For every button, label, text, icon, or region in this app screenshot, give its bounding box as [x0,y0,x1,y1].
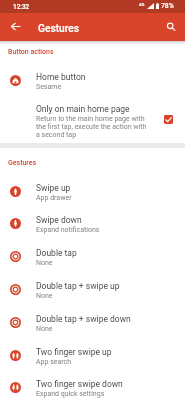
staticText: Two finger swipe up [36,347,112,357]
staticText: Expand quick settings [36,390,105,398]
button[interactable]: Swipe up [0,174,185,207]
staticText: Swipe down [36,215,82,225]
staticText: App search [36,358,72,366]
staticText: Gestures [38,23,79,35]
staticText: 12:32 [13,3,30,11]
staticText: None [36,292,53,300]
staticText: Expand notifications [36,226,100,234]
staticText: None [36,259,53,267]
staticText: Return to the main home page with the fi… [36,115,152,139]
staticText: App drawer [36,194,72,202]
staticText: Button actions [8,48,54,56]
button[interactable]: Two finger swipe down [0,370,185,400]
button[interactable]: Only on main home page, checked [164,115,173,124]
button[interactable]: Only on main home page [0,100,185,140]
staticText: 78% [161,2,174,10]
staticText: Home button [36,72,86,82]
staticText: Gestures [8,159,37,167]
button[interactable]: Swipe down [0,206,185,239]
button[interactable]: Double tap + swipe up [0,272,185,305]
button[interactable]: Home button [0,63,185,96]
staticText: Double tap [36,248,77,258]
button[interactable]: Search [159,15,183,39]
staticText: Sesame [36,83,62,91]
staticText: Double tap + swipe up [36,281,120,291]
staticText: Two finger swipe down [36,379,123,389]
staticText: 4G [139,2,145,7]
button[interactable]: Double tap + swipe down [0,305,185,338]
staticText: Swipe up [36,183,71,193]
staticText: None [36,325,53,333]
staticText: Only on main home page [36,104,130,114]
button[interactable]: Double tap [0,239,185,272]
button[interactable]: Navigate up [3,14,27,38]
staticText: Double tap + swipe down [36,314,131,324]
button[interactable]: Two finger swipe up [0,338,185,371]
